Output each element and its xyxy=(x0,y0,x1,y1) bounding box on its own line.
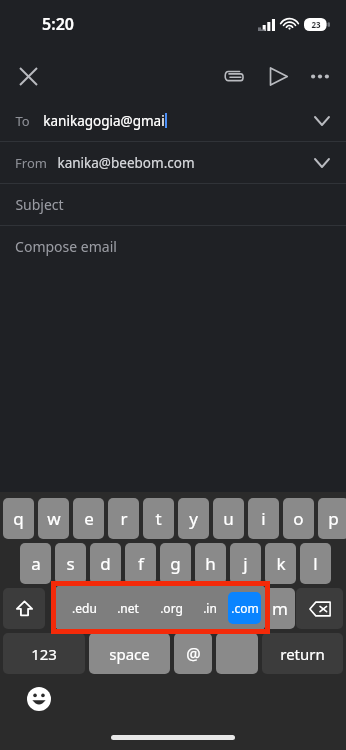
button[interactable]: o xyxy=(283,498,314,539)
staticText: 5:20 xyxy=(42,13,74,35)
button[interactable]: r xyxy=(108,498,139,539)
button[interactable]: s xyxy=(55,543,86,584)
staticText: space xyxy=(109,644,150,664)
staticText: .edu xyxy=(72,600,97,616)
button[interactable]: .edu xyxy=(63,592,105,624)
staticText: t xyxy=(155,507,162,530)
button[interactable]: q xyxy=(3,498,34,539)
button[interactable]: v xyxy=(159,588,190,629)
staticText: n xyxy=(239,597,250,620)
button[interactable]: Compose email xyxy=(0,226,346,267)
button[interactable]: return xyxy=(262,633,343,674)
button[interactable]: u xyxy=(213,498,244,539)
button[interactable]: .org xyxy=(150,592,192,624)
staticText: v xyxy=(170,597,179,620)
button[interactable]: n xyxy=(229,588,260,629)
staticText: .net xyxy=(117,600,139,616)
button[interactable]: d xyxy=(90,543,121,584)
button[interactable]: i xyxy=(248,498,279,539)
staticText: From xyxy=(15,154,47,172)
staticText: i xyxy=(261,507,266,530)
staticText: To xyxy=(15,112,30,130)
button[interactable]: Close xyxy=(8,56,48,96)
button[interactable]: .com xyxy=(228,592,261,624)
staticText: 123 xyxy=(31,644,57,664)
button[interactable]: More options xyxy=(300,56,340,96)
staticText: Compose email xyxy=(15,237,117,256)
staticText: Subject xyxy=(15,195,64,214)
button[interactable]: e xyxy=(73,498,104,539)
button[interactable]: g xyxy=(160,543,191,584)
button[interactable]: p xyxy=(318,498,346,539)
button[interactable]: Period xyxy=(216,633,258,674)
button[interactable]: t xyxy=(143,498,174,539)
staticText: r xyxy=(120,507,128,530)
staticText: return xyxy=(280,644,325,664)
staticText: g xyxy=(170,552,181,575)
staticText: h xyxy=(205,552,216,575)
staticText: d xyxy=(100,552,111,575)
staticText: y xyxy=(189,507,198,530)
button[interactable]: h xyxy=(195,543,226,584)
button[interactable]: .in xyxy=(194,592,226,624)
staticText: .in xyxy=(203,600,217,616)
staticText: p xyxy=(328,507,339,530)
button[interactable]: k xyxy=(265,543,296,584)
button[interactable]: Emoji keyboard xyxy=(24,684,54,714)
button[interactable]: c xyxy=(124,588,155,629)
button[interactable]: a xyxy=(20,543,51,584)
staticText: o xyxy=(293,507,304,530)
button[interactable]: y xyxy=(178,498,209,539)
staticText: kanika@beebom.com xyxy=(57,154,195,172)
staticText: q xyxy=(13,507,24,530)
staticText: b xyxy=(204,597,215,620)
staticText: u xyxy=(223,507,234,530)
staticText: k xyxy=(276,552,286,575)
button[interactable]: 123 xyxy=(3,633,85,674)
button[interactable]: f xyxy=(125,543,156,584)
button[interactable]: Attach file xyxy=(212,54,256,98)
staticText: kanikagogia@gmai xyxy=(43,112,165,130)
button[interactable]: Subject xyxy=(0,184,346,225)
staticText: j xyxy=(243,552,248,575)
staticText: l xyxy=(313,552,318,575)
staticText: m xyxy=(272,597,288,620)
staticText: s xyxy=(66,552,75,575)
button[interactable]: Expand To xyxy=(302,101,342,141)
button[interactable]: m xyxy=(264,588,295,629)
button[interactable]: z xyxy=(54,588,85,629)
button[interactable]: To xyxy=(0,100,346,141)
button[interactable]: w xyxy=(38,498,69,539)
button[interactable]: Backspace xyxy=(296,588,343,629)
button[interactable]: b xyxy=(194,588,225,629)
staticText: @ xyxy=(186,643,201,665)
staticText: e xyxy=(84,507,94,530)
button[interactable]: j xyxy=(230,543,261,584)
button[interactable]: space xyxy=(89,633,170,674)
button[interactable]: x xyxy=(89,588,120,629)
staticText: z xyxy=(66,597,74,620)
staticText: .org xyxy=(160,600,183,616)
staticText: a xyxy=(31,552,41,575)
staticText: 23 xyxy=(311,19,321,30)
button[interactable]: Expand From xyxy=(302,143,342,183)
button[interactable]: l xyxy=(300,543,331,584)
staticText: c xyxy=(135,597,144,620)
button[interactable]: .net xyxy=(107,592,148,624)
button[interactable]: @ xyxy=(174,633,212,674)
button[interactable]: Send xyxy=(256,54,300,98)
staticText: f xyxy=(138,552,144,575)
staticText: w xyxy=(47,507,61,530)
staticText: .com xyxy=(231,600,259,616)
button[interactable]: From xyxy=(0,142,346,183)
button[interactable]: Shift xyxy=(3,588,45,629)
